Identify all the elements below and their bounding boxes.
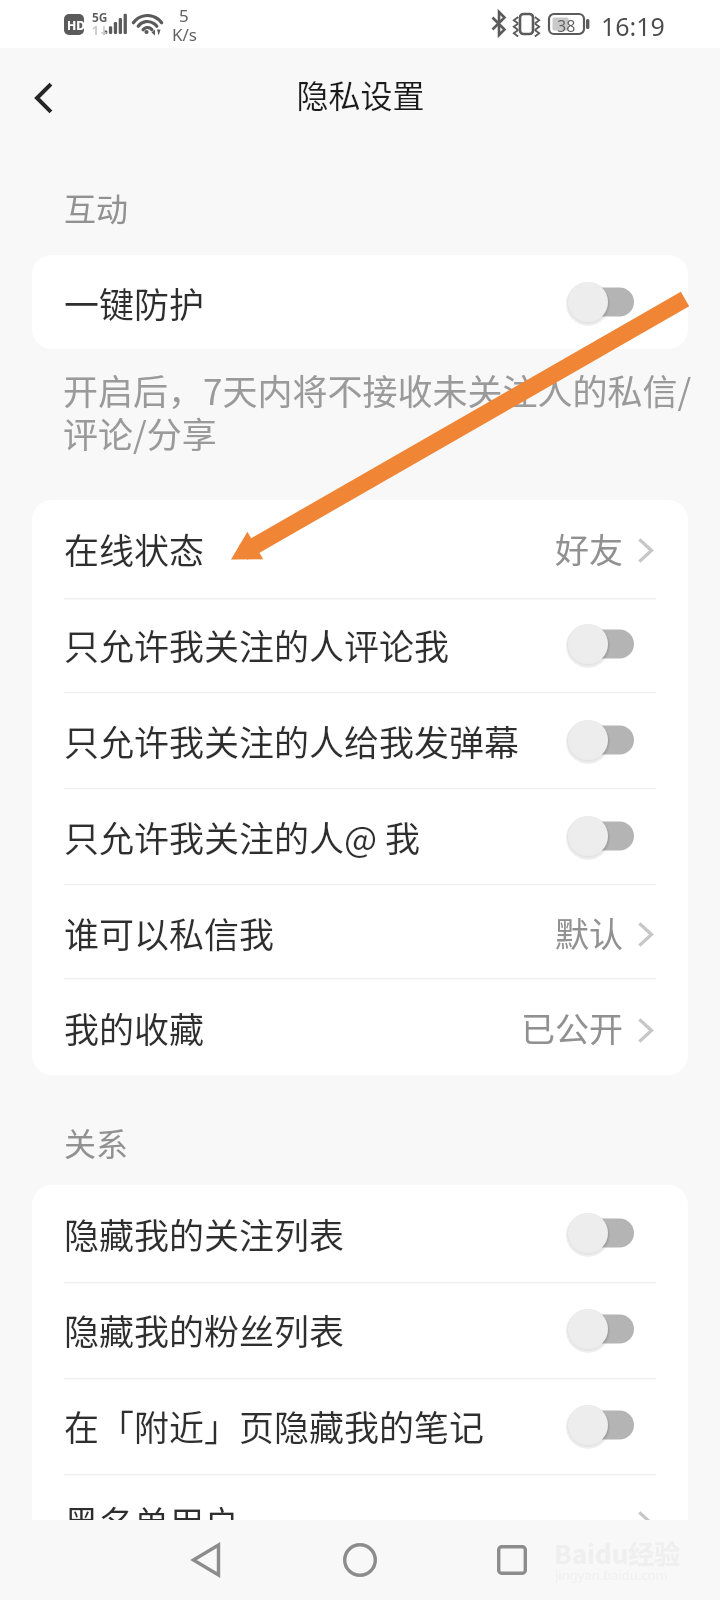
button[interactable]: 我的收藏 [32, 980, 688, 1075]
staticText: 开启后，7天内将不接收未关注人的私信/评论/分享 [63, 364, 711, 458]
button[interactable]: 一键防护 [32, 255, 688, 349]
button[interactable]: 在「附近」页隐藏我的笔记 [32, 1377, 688, 1473]
staticText: 关系 [64, 1119, 129, 1165]
button[interactable]: Toggle 只允许我关注的人给我发弹幕 [568, 716, 634, 764]
button[interactable]: Recents [480, 1520, 540, 1600]
button[interactable]: Toggle 只允许我关注的人@ 我 [568, 812, 634, 860]
staticText: 隐私设置 [296, 71, 425, 117]
staticText: 谁可以私信我 [64, 907, 555, 958]
staticText: 我的收藏 [64, 1002, 521, 1053]
staticText: 隐藏我的关注列表 [64, 1208, 568, 1259]
staticText: 只允许我关注的人给我发弹幕 [64, 715, 568, 766]
staticText: 在「附近」页隐藏我的笔记 [64, 1400, 568, 1451]
button[interactable]: Home [330, 1520, 390, 1600]
button[interactable]: 黑名单用户 [32, 1473, 688, 1569]
button[interactable]: Toggle 隐藏我的粉丝列表 [568, 1305, 634, 1353]
staticText: HD [67, 17, 85, 33]
staticText: K/s [172, 23, 197, 46]
button[interactable]: Back [15, 70, 71, 126]
button[interactable]: Toggle 在「附近」页隐藏我的笔记 [568, 1401, 634, 1449]
staticText: 只允许我关注的人@ 我 [64, 811, 568, 862]
staticText: 1↓ [92, 22, 109, 38]
button[interactable]: 谁可以私信我 [32, 884, 688, 980]
button[interactable]: 只允许我关注的人@ 我 [32, 788, 688, 884]
staticText: 38 [557, 15, 576, 37]
button[interactable]: 隐藏我的关注列表 [32, 1185, 688, 1281]
staticText: 5G [92, 9, 108, 25]
staticText: 在线状态 [64, 523, 555, 574]
button[interactable]: Back [180, 1520, 240, 1600]
button[interactable]: 只允许我关注的人给我发弹幕 [32, 692, 688, 788]
staticText: 隐藏我的粉丝列表 [64, 1304, 568, 1355]
staticText: 互动 [64, 184, 129, 230]
staticText: 只允许我关注的人评论我 [64, 619, 568, 670]
staticText: 已公开 [521, 1003, 623, 1052]
staticText: 一键防护 [64, 277, 568, 328]
button[interactable]: 只允许我关注的人评论我 [32, 596, 688, 692]
button[interactable]: 在线状态 [32, 500, 688, 596]
staticText: 黑名单用户 [64, 1496, 634, 1547]
staticText: Baidu经验 [554, 1534, 681, 1572]
staticText: 好友 [555, 524, 623, 573]
button[interactable]: 隐藏我的粉丝列表 [32, 1281, 688, 1377]
button[interactable]: Toggle 只允许我关注的人评论我 [568, 620, 634, 668]
staticText: 默认 [555, 908, 623, 957]
button[interactable]: Toggle 一键防护 [568, 278, 634, 326]
button[interactable]: Toggle 隐藏我的关注列表 [568, 1209, 634, 1257]
staticText: 16:19 [601, 9, 665, 43]
staticText: 5 [179, 4, 189, 27]
